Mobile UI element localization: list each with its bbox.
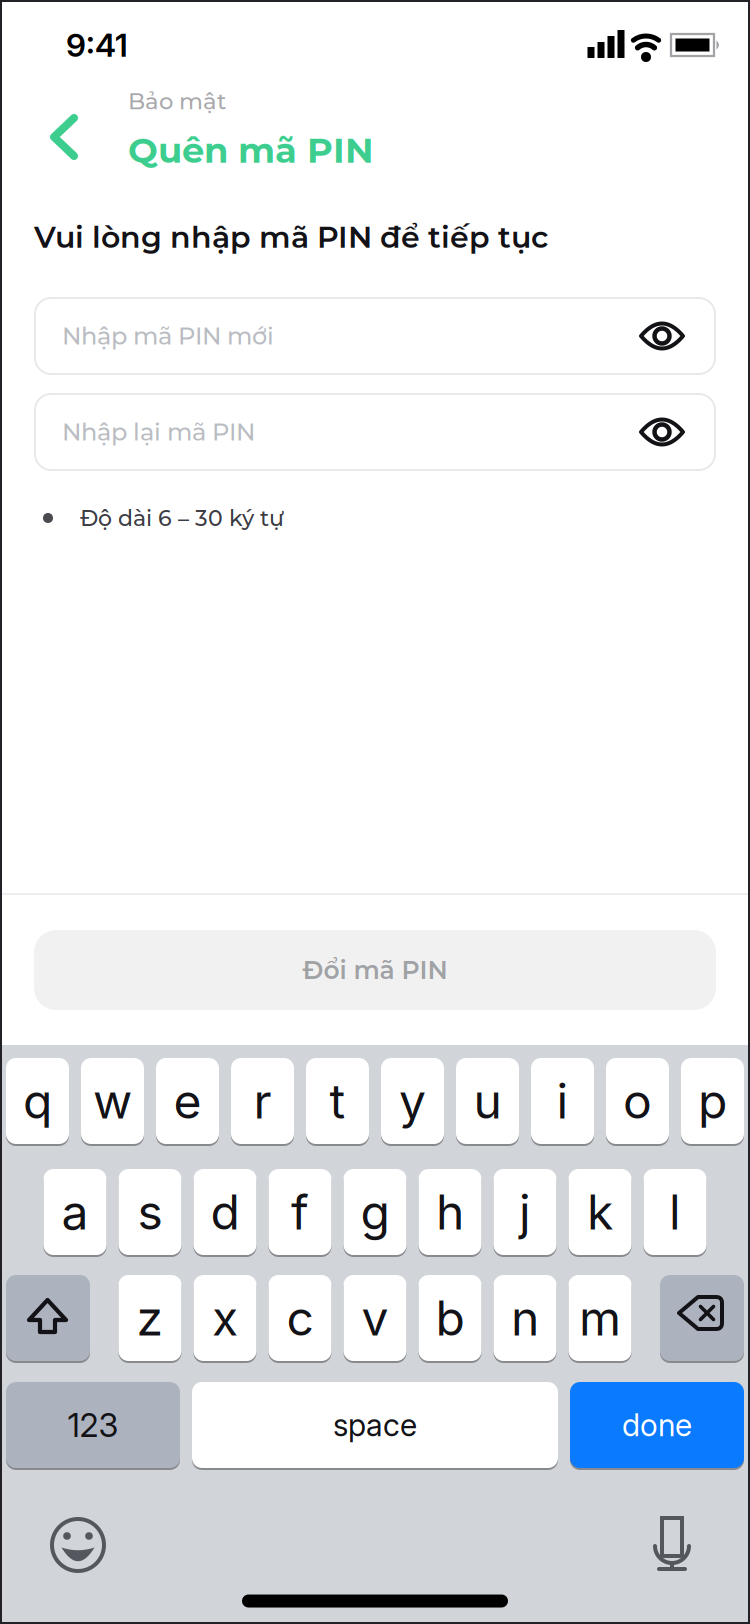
staticText: 123 [67, 1405, 118, 1445]
button[interactable]: q [6, 1058, 69, 1144]
button[interactable]: f [268, 1169, 331, 1255]
button[interactable]: z [118, 1275, 181, 1361]
staticText: d [210, 1183, 239, 1241]
button[interactable]: j [493, 1169, 556, 1255]
staticText: i [556, 1072, 568, 1130]
staticText: k [587, 1183, 613, 1241]
staticText: done [622, 1406, 692, 1443]
button[interactable]: i [531, 1058, 594, 1144]
button[interactable]: r [231, 1058, 294, 1144]
button[interactable]: d [193, 1169, 256, 1255]
button[interactable]: Delete [660, 1275, 744, 1361]
staticText: j [519, 1183, 531, 1241]
button[interactable]: a [43, 1169, 106, 1255]
button[interactable]: m [568, 1275, 631, 1361]
staticText: w [93, 1072, 132, 1130]
staticText: Nhập mã PIN mới [62, 321, 274, 351]
staticText: o [623, 1072, 652, 1130]
staticText: Nhập lại mã PIN [62, 417, 255, 447]
button[interactable]: Dictation [654, 1516, 690, 1572]
button[interactable]: 123 [6, 1382, 180, 1468]
staticText: g [360, 1183, 389, 1241]
staticText: Vui lòng nhập mã PIN để tiếp tục [34, 219, 548, 255]
staticText: n [511, 1289, 539, 1347]
button[interactable]: t [306, 1058, 369, 1144]
button[interactable]: k [568, 1169, 631, 1255]
staticText: Bảo mật [128, 87, 226, 115]
staticText: h [436, 1183, 464, 1241]
staticText: f [291, 1183, 309, 1241]
staticText: b [435, 1289, 464, 1347]
staticText: c [286, 1289, 313, 1347]
button[interactable]: w [81, 1058, 144, 1144]
button[interactable]: e [156, 1058, 219, 1144]
staticText: l [669, 1183, 681, 1241]
button[interactable]: Show PIN [638, 412, 686, 452]
button[interactable]: Nhập lại mã PIN [34, 393, 716, 471]
staticText: z [136, 1289, 163, 1347]
button[interactable]: Shift [6, 1275, 90, 1361]
staticText: q [23, 1072, 52, 1130]
button[interactable]: s [118, 1169, 181, 1255]
button[interactable]: done [570, 1382, 744, 1468]
button[interactable]: Show PIN [638, 316, 686, 356]
button[interactable]: Emoji [50, 1517, 106, 1573]
staticText: a [61, 1183, 88, 1241]
button[interactable]: l [643, 1169, 706, 1255]
button[interactable]: b [418, 1275, 481, 1361]
staticText: space [333, 1406, 417, 1443]
staticText: y [399, 1072, 426, 1130]
button[interactable]: x [193, 1275, 256, 1361]
staticText: u [473, 1072, 501, 1130]
button[interactable]: Nhập mã PIN mới [34, 297, 716, 375]
button[interactable]: y [381, 1058, 444, 1144]
button[interactable]: n [493, 1275, 556, 1361]
button[interactable]: Đổi mã PIN [34, 930, 716, 1010]
staticText: p [698, 1072, 727, 1130]
staticText: Quên mã PIN [128, 128, 374, 172]
button[interactable]: c [268, 1275, 331, 1361]
button[interactable]: g [343, 1169, 406, 1255]
button[interactable]: u [456, 1058, 519, 1144]
button[interactable]: p [681, 1058, 744, 1144]
staticText: m [579, 1289, 621, 1347]
staticText: e [173, 1072, 201, 1130]
staticText: s [137, 1183, 162, 1241]
staticText: Độ dài 6 – 30 ký tự [80, 505, 284, 531]
button[interactable]: o [606, 1058, 669, 1144]
button[interactable]: v [343, 1275, 406, 1361]
staticText: r [253, 1072, 271, 1130]
button[interactable]: space [192, 1382, 558, 1468]
button[interactable]: h [418, 1169, 481, 1255]
button[interactable]: Back [47, 114, 81, 160]
staticText: t [329, 1072, 345, 1130]
staticText: x [212, 1289, 238, 1347]
staticText: Đổi mã PIN [302, 955, 447, 985]
staticText: 9:41 [66, 26, 128, 64]
staticText: v [361, 1289, 388, 1347]
